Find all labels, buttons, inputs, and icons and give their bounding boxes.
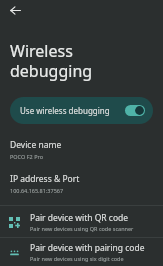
button[interactable]: Device name	[0, 139, 163, 160]
staticText: Pair new devices using QR code scanner	[30, 225, 134, 232]
button[interactable]: Pair device with pairing code	[0, 238, 163, 266]
staticText: Pair device with pairing code	[30, 242, 145, 254]
staticText: Wireless debugging	[10, 40, 155, 81]
staticText: 100.64.165.81:37567	[10, 187, 64, 194]
button[interactable]: Back	[5, 0, 25, 20]
staticText: Pair new devices using six digit code	[30, 255, 124, 262]
button[interactable]: IP address & Port	[0, 173, 163, 194]
staticText: Use wireless debugging	[20, 105, 121, 116]
staticText: IP address & Port	[10, 173, 80, 185]
staticText: POCO F2 Pro	[10, 153, 43, 160]
other: Pair device with pairing code	[6, 244, 22, 260]
button[interactable]: Use wireless debugging	[10, 97, 153, 124]
other: Pair device with QR code	[6, 214, 22, 230]
staticText: Pair device with QR code	[30, 212, 129, 224]
button[interactable]: Pair device with QR code	[0, 206, 163, 237]
staticText: Device name	[10, 139, 62, 151]
